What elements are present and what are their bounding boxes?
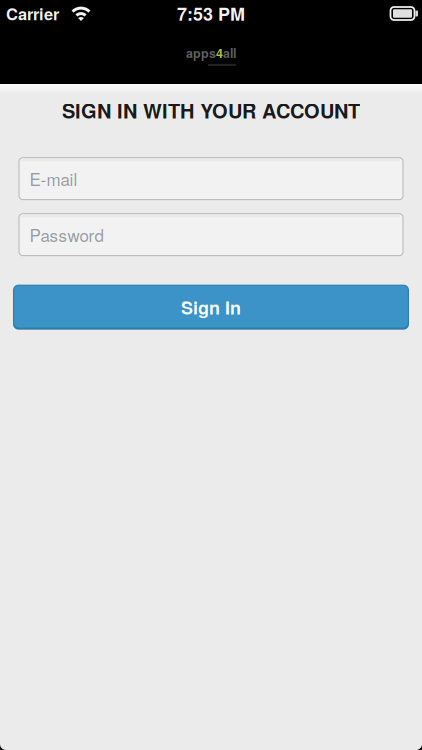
button[interactable]: E-mail [19,158,403,200]
staticText: Password [29,222,103,247]
staticText: E-mail [29,166,77,191]
button[interactable]: Password [19,214,403,256]
staticText: all [223,44,236,62]
button[interactable]: Sign In [13,285,409,330]
staticText: SIGN IN WITH YOUR ACCOUNT [62,96,360,125]
staticText: apps [186,44,216,62]
staticText: 4 [216,44,223,62]
staticText: Sign In [181,294,241,320]
staticText: Carrier [6,2,59,25]
staticText: 7:53 PM [177,1,245,26]
